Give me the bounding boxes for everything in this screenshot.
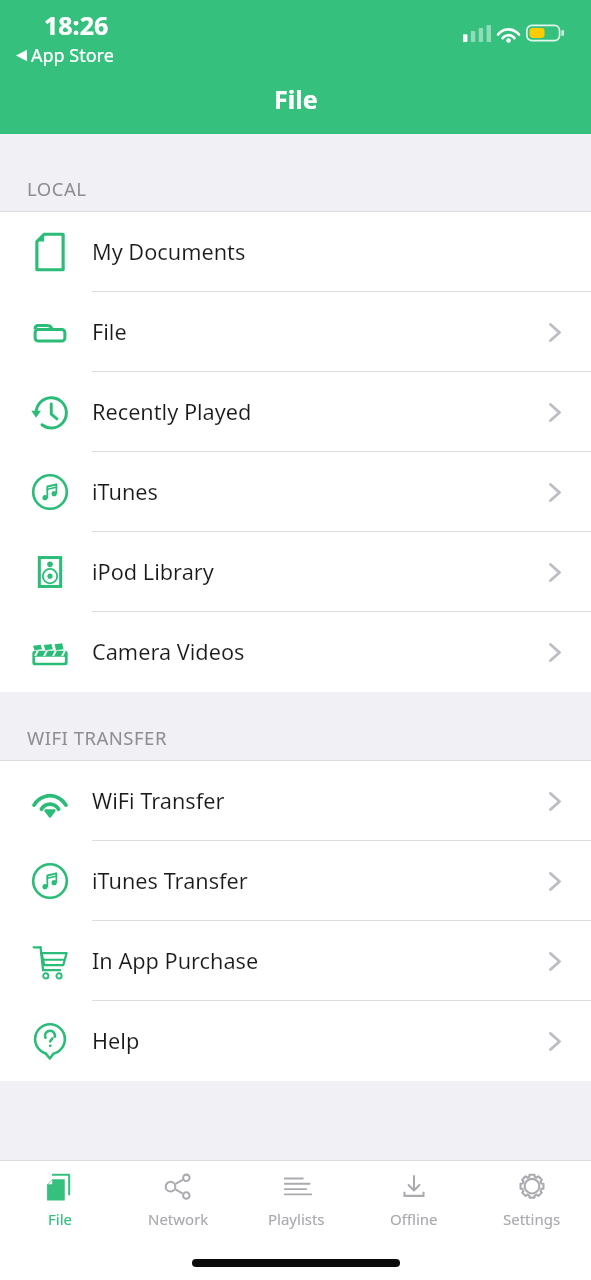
button[interactable]: Help <box>0 1001 591 1081</box>
button[interactable]: Playlists <box>237 1161 355 1239</box>
staticText: Recently Played <box>92 397 252 427</box>
button[interactable]: Settings <box>473 1161 591 1239</box>
staticText: iTunes <box>92 477 158 507</box>
button[interactable]: iTunes <box>0 452 591 532</box>
staticText: iPod Library <box>92 557 214 587</box>
button[interactable]: iPod Library <box>0 532 591 612</box>
button[interactable]: File <box>0 1161 119 1239</box>
staticText: App Store <box>31 43 114 68</box>
button[interactable]: Network <box>119 1161 237 1239</box>
staticText: Playlists <box>268 1209 325 1229</box>
staticText: Settings <box>503 1209 561 1229</box>
button[interactable]: File <box>0 292 591 372</box>
staticText: File <box>48 1209 72 1229</box>
staticText: WIFI TRANSFER <box>27 725 167 750</box>
staticText: iTunes Transfer <box>92 866 248 896</box>
button[interactable]: App Store <box>16 43 114 68</box>
staticText: File <box>92 317 127 347</box>
button[interactable]: Offline <box>355 1161 473 1239</box>
button[interactable]: Camera Videos <box>0 612 591 692</box>
button[interactable]: WiFi Transfer <box>0 761 591 841</box>
staticText: Network <box>148 1209 209 1229</box>
button[interactable]: Recently Played <box>0 372 591 452</box>
staticText: LOCAL <box>27 176 87 201</box>
staticText: 18:26 <box>44 8 109 42</box>
staticText: Help <box>92 1026 140 1056</box>
button[interactable]: In App Purchase <box>0 921 591 1001</box>
staticText: Camera Videos <box>92 637 245 667</box>
staticText: In App Purchase <box>92 946 259 976</box>
staticText: Offline <box>390 1209 438 1229</box>
button[interactable]: My Documents <box>0 212 591 292</box>
staticText: File <box>274 82 318 116</box>
staticText: My Documents <box>92 237 246 267</box>
button[interactable]: iTunes Transfer <box>0 841 591 921</box>
staticText: WiFi Transfer <box>92 786 225 816</box>
